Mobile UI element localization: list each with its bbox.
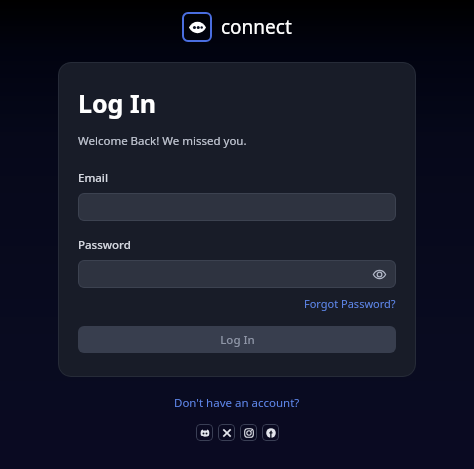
staticText: Password	[78, 237, 131, 253]
staticText: connect	[221, 14, 292, 40]
staticText: Log In	[78, 86, 156, 120]
button[interactable]: Instagram	[240, 424, 257, 441]
staticText: Welcome Back! We missed you.	[78, 133, 247, 149]
button[interactable]: Facebook	[262, 424, 279, 441]
button[interactable]: Discord	[196, 424, 213, 441]
button[interactable]: Show password	[370, 265, 388, 283]
staticText: Forgot Password?	[304, 296, 396, 311]
button[interactable]: X	[218, 424, 235, 441]
button[interactable]: Forgot Password?	[304, 296, 396, 311]
button[interactable]: Show password	[78, 260, 396, 288]
staticText: Log In	[220, 332, 255, 348]
staticText: Email	[78, 170, 109, 186]
button[interactable]: Don't have an account?	[174, 395, 300, 411]
staticText: Don't have an account?	[174, 395, 300, 411]
button[interactable]: Email field	[78, 193, 396, 221]
button[interactable]: Log In	[78, 326, 396, 353]
